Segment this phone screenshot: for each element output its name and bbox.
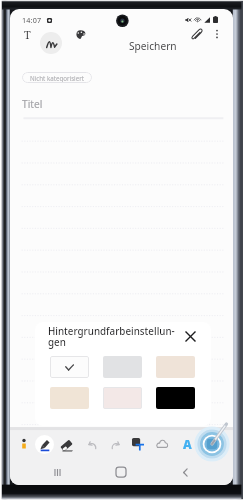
staticText: A: [183, 436, 192, 452]
button[interactable]: More options: [208, 25, 226, 43]
button[interactable]: Cloud sync: [153, 435, 171, 453]
button[interactable]: Text mode: [18, 25, 36, 43]
button[interactable]: Background colour 1: [50, 356, 89, 378]
button[interactable]: Background colour 6: [156, 387, 195, 409]
button[interactable]: Undo: [83, 435, 101, 453]
staticText: Speichern: [129, 39, 177, 53]
button[interactable]: Background colour 5: [103, 387, 142, 409]
button[interactable]: Nicht kategorisiert: [22, 72, 92, 83]
button[interactable]: Auto recognition: [178, 435, 196, 453]
staticText: T: [24, 27, 31, 42]
button[interactable]: Home: [110, 461, 132, 483]
button[interactable]: Speichern: [126, 37, 180, 55]
button[interactable]: Recent apps: [46, 461, 68, 483]
button[interactable]: Attach: [187, 25, 205, 43]
button[interactable]: Highlighter: [15, 435, 33, 453]
button[interactable]: Eraser: [57, 436, 75, 454]
staticText: Titel: [22, 97, 43, 111]
staticText: 14:07: [22, 15, 42, 25]
button[interactable]: Convert handwriting to text: [129, 435, 147, 453]
button[interactable]: Back: [174, 461, 196, 483]
staticText: Hintergrundfarbeinstellun- gen: [48, 325, 183, 349]
button[interactable]: Pen: [35, 435, 54, 454]
button[interactable]: Close: [181, 327, 199, 345]
button[interactable]: Palette: [71, 25, 89, 43]
button[interactable]: Stylus pointer: [192, 424, 232, 464]
button[interactable]: Handwriting mode: [40, 32, 62, 54]
button[interactable]: Redo: [106, 435, 124, 453]
staticText: Nicht kategorisiert: [30, 74, 84, 82]
